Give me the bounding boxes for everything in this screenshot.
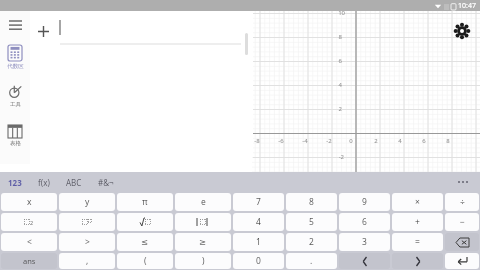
- staticText: ans: [23, 256, 36, 266]
- button[interactable]: y: [59, 193, 115, 211]
- staticText: 工具: [10, 101, 21, 108]
- button[interactable]: [339, 253, 390, 269]
- staticText: 4: [338, 81, 342, 89]
- staticText: ): [202, 255, 205, 267]
- button[interactable]: 0: [233, 253, 284, 269]
- staticText: y: [85, 196, 90, 208]
- staticText: 1: [256, 236, 261, 248]
- button[interactable]: [392, 253, 443, 269]
- staticText: -2: [326, 137, 332, 145]
- button[interactable]: [445, 253, 479, 269]
- staticText: 5: [309, 216, 314, 228]
- button[interactable]: [56, 14, 253, 48]
- button[interactable]: Add input: [30, 18, 56, 44]
- staticText: 8: [309, 196, 314, 208]
- button[interactable]: 2: [1, 213, 57, 231]
- staticText: 4: [398, 137, 402, 145]
- button[interactable]: ≥: [175, 233, 231, 251]
- staticText: ABC: [66, 177, 82, 188]
- button[interactable]: 6: [339, 213, 390, 231]
- button[interactable]: ABC: [58, 172, 90, 192]
- button[interactable]: x: [1, 193, 57, 211]
- staticText: 2: [374, 137, 378, 145]
- button[interactable]: 3: [339, 233, 390, 251]
- button[interactable]: +: [392, 213, 443, 231]
- button[interactable]: 123: [0, 172, 30, 192]
- staticText: 0: [349, 137, 353, 145]
- staticText: ≥: [199, 237, 207, 247]
- staticText: 9: [362, 196, 367, 208]
- button[interactable]: 表格: [0, 119, 30, 159]
- button[interactable]: −: [445, 213, 479, 231]
- button[interactable]: 4: [233, 213, 284, 231]
- staticText: =: [415, 236, 420, 248]
- staticText: 2: [338, 105, 342, 113]
- button[interactable]: .: [286, 253, 337, 269]
- staticText: 8: [338, 33, 342, 41]
- staticText: 2: [30, 219, 34, 226]
- button[interactable]: ans: [1, 253, 57, 269]
- staticText: ÷: [460, 196, 465, 208]
- staticText: x: [27, 196, 32, 208]
- staticText: 6: [422, 137, 426, 145]
- staticText: 4: [256, 216, 261, 228]
- button[interactable]: <: [1, 233, 57, 251]
- button[interactable]: [59, 213, 115, 231]
- staticText: −: [460, 216, 465, 228]
- staticText: ,: [86, 255, 89, 267]
- staticText: -6: [278, 137, 284, 145]
- staticText: -8: [254, 137, 260, 145]
- staticText: e: [201, 196, 206, 208]
- button[interactable]: =: [392, 233, 443, 251]
- staticText: >: [85, 236, 90, 248]
- staticText: -2: [338, 153, 344, 161]
- staticText: π: [142, 196, 148, 208]
- staticText: 123: [8, 177, 22, 188]
- staticText: f(x): [38, 177, 50, 188]
- button[interactable]: [117, 213, 173, 231]
- staticText: 8: [446, 137, 450, 145]
- staticText: 0: [256, 255, 261, 267]
- button[interactable]: >: [59, 233, 115, 251]
- staticText: <: [27, 236, 32, 248]
- button[interactable]: 2: [286, 233, 337, 251]
- button[interactable]: ×: [392, 193, 443, 211]
- button[interactable]: #&¬: [90, 172, 122, 192]
- button[interactable]: 9: [339, 193, 390, 211]
- staticText: ≤: [141, 237, 149, 247]
- staticText: -4: [302, 137, 308, 145]
- button[interactable]: 工具: [0, 79, 30, 119]
- staticText: 表格: [10, 140, 21, 147]
- staticText: .: [310, 255, 313, 267]
- staticText: 代数区: [7, 63, 24, 70]
- button[interactable]: [175, 213, 231, 231]
- button[interactable]: 7: [233, 193, 284, 211]
- staticText: #&¬: [98, 177, 114, 188]
- staticText: 2: [309, 236, 314, 248]
- button[interactable]: Graphics settings: [452, 21, 472, 41]
- button[interactable]: e: [175, 193, 231, 211]
- button[interactable]: Menu: [0, 11, 30, 39]
- button[interactable]: More: [450, 172, 476, 192]
- button[interactable]: 5: [286, 213, 337, 231]
- staticText: ×: [415, 196, 420, 208]
- button[interactable]: ≤: [117, 233, 173, 251]
- button[interactable]: (: [117, 253, 173, 269]
- staticText: 7: [256, 196, 261, 208]
- staticText: 6: [362, 216, 367, 228]
- button[interactable]: 代数区: [0, 39, 30, 79]
- staticText: 6: [338, 57, 342, 65]
- button[interactable]: f(x): [30, 172, 58, 192]
- button[interactable]: 8: [286, 193, 337, 211]
- staticText: 10: [338, 9, 345, 17]
- button[interactable]: ,: [59, 253, 115, 269]
- staticText: 10:47: [458, 1, 476, 11]
- staticText: 3: [362, 236, 367, 248]
- button[interactable]: π: [117, 193, 173, 211]
- button[interactable]: 1: [233, 233, 284, 251]
- button[interactable]: ): [175, 253, 231, 269]
- staticText: (: [144, 255, 147, 267]
- button[interactable]: ÷: [445, 193, 479, 211]
- staticText: +: [415, 216, 420, 228]
- button[interactable]: [445, 233, 479, 251]
